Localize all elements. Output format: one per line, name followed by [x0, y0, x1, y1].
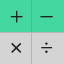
button[interactable]: Multiply [0, 32, 32, 64]
button[interactable]: Subtract [32, 0, 64, 32]
button[interactable]: Add [0, 0, 32, 32]
button[interactable]: Divide [32, 32, 64, 64]
